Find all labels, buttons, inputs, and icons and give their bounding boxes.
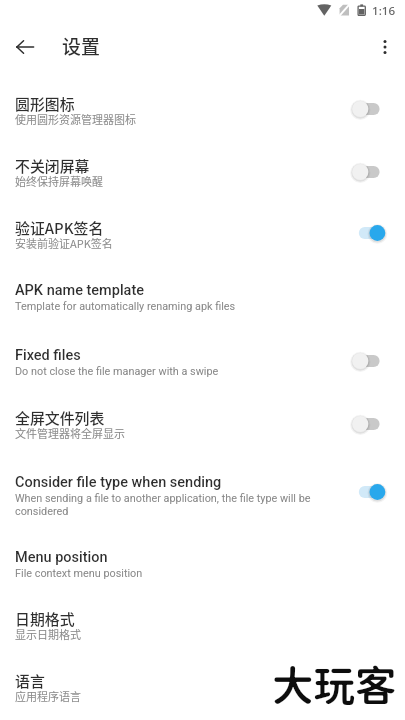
staticText: 应用程序语言 (15, 688, 81, 704)
staticText: 显示日期格式 (15, 626, 81, 642)
button[interactable]: 不关闭屏幕 (0, 145, 405, 193)
staticText: 安装前验证APK签名 (15, 235, 113, 251)
staticText: When sending a file to another applicati… (15, 492, 315, 518)
staticText: 文件管理器将全屏显示 (15, 425, 125, 441)
button[interactable]: Fixed files (0, 335, 405, 383)
button[interactable]: Switch on (349, 220, 387, 246)
button[interactable]: 日期格式 (0, 598, 405, 646)
staticText: 验证APK签名 (15, 217, 104, 239)
staticText: 圆形图标 (15, 93, 75, 115)
button[interactable]: Switch off (349, 159, 387, 185)
staticText: Do not close the file manager with a swi… (15, 365, 219, 378)
staticText: Consider file type when sending (15, 474, 222, 491)
staticText: 日期格式 (15, 608, 75, 630)
button[interactable]: Back (7, 29, 43, 65)
button[interactable]: 圆形图标 (0, 83, 405, 131)
button[interactable]: Switch on (349, 479, 387, 505)
staticText: 大玩客 (272, 661, 397, 710)
staticText: 始终保持屏幕唤醒 (15, 173, 103, 189)
button[interactable]: 语言 (0, 660, 405, 708)
staticText: 语言 (15, 670, 45, 692)
staticText: Fixed files (15, 347, 81, 364)
staticText: 不关闭屏幕 (15, 155, 90, 177)
button[interactable]: Switch off (349, 411, 387, 437)
button[interactable]: Switch off (349, 348, 387, 374)
button[interactable]: Switch off (349, 96, 387, 122)
staticText: APK name template (15, 282, 145, 299)
staticText: 全屏文件列表 (15, 407, 105, 429)
button[interactable]: 全屏文件列表 (0, 397, 405, 445)
staticText: Menu position (15, 549, 108, 566)
staticText: 使用圆形资源管理器图标 (15, 111, 136, 127)
staticText: 1:16 (372, 3, 396, 19)
staticText: Template for automatically renaming apk … (15, 300, 236, 313)
staticText: 设置 (62, 32, 100, 59)
button[interactable]: 验证APK签名 (0, 207, 405, 255)
button[interactable]: More options (367, 29, 403, 65)
button[interactable]: APK name template (0, 270, 405, 318)
button[interactable]: Menu position (0, 537, 405, 585)
button[interactable]: Consider file type when sending (0, 462, 405, 510)
staticText: File context menu position (15, 567, 143, 580)
